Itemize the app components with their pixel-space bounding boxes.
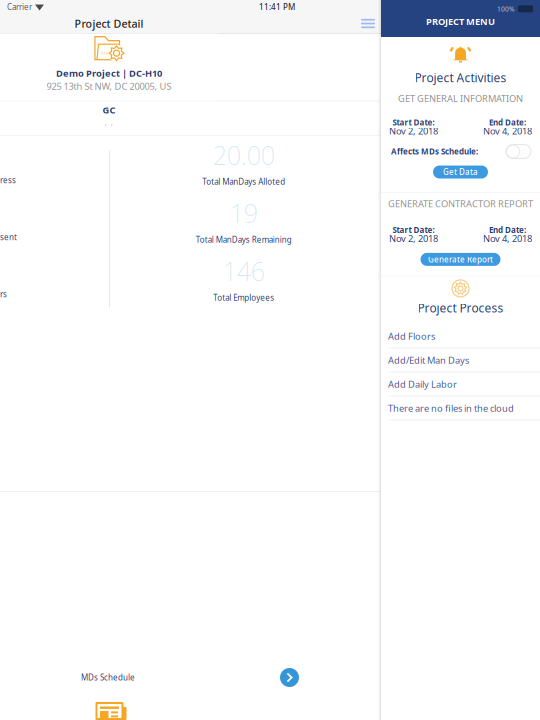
button[interactable]: Generate Report [420, 253, 500, 266]
staticText: 19 [230, 196, 258, 230]
staticText: 100% [497, 4, 515, 13]
staticText: Add/Edit Man Days [388, 354, 469, 366]
staticText: Total ManDays Remaining [196, 234, 292, 245]
staticText: Affects MDs Schedule: [391, 146, 478, 157]
staticText: 925 13th St NW, DC 20005, US [46, 80, 171, 92]
staticText: Add Daily Labor [388, 378, 457, 390]
staticText: There are no files in the cloud [388, 402, 514, 414]
staticText: GC [102, 104, 115, 116]
staticText: GENERATE CONTRACTOR REPORT [388, 197, 533, 210]
staticText: Total ManDays Alloted [202, 176, 285, 187]
staticText: 20.00 [213, 138, 275, 172]
staticText: PROJECT MENU [426, 15, 495, 28]
button[interactable]: There are no files in the cloud [381, 396, 540, 420]
staticText: Project Detail [74, 16, 143, 31]
staticText: 146 [223, 254, 265, 288]
staticText: Generate Report [428, 254, 493, 265]
button[interactable]: Add Daily Labor [381, 372, 540, 396]
staticText: Start Date: [392, 117, 434, 128]
staticText: Nov 2, 2018 [389, 125, 438, 137]
staticText: Project Activities [414, 69, 506, 85]
button[interactable]: Add/Edit Man Days [381, 348, 540, 372]
button[interactable]: Get Data [433, 165, 488, 178]
staticText: Nov 4, 2018 [483, 125, 532, 137]
staticText: ress [0, 175, 16, 185]
staticText: 11:41 PM [259, 2, 295, 12]
staticText: Carrier [7, 2, 32, 12]
staticText: rs [0, 289, 7, 299]
staticText: Nov 4, 2018 [483, 232, 532, 245]
staticText: Add Floors [388, 330, 435, 342]
staticText: Get Data [443, 167, 478, 177]
staticText: sent [0, 232, 17, 242]
staticText: Demo Project | DC-H10 [56, 67, 162, 79]
staticText: GET GENERAL INFORMATION [398, 92, 523, 105]
staticText: Project Process [417, 300, 503, 316]
staticText: Nov 2, 2018 [389, 232, 438, 245]
staticText: End Date: [489, 117, 526, 128]
staticText: MDs Schedule [81, 672, 135, 683]
button[interactable]: MDs Schedule [81, 672, 135, 682]
button[interactable]: Add Floors [381, 324, 540, 348]
staticText: , , [105, 118, 113, 127]
staticText: End Date: [489, 225, 526, 235]
staticText: Start Date: [392, 225, 434, 235]
button[interactable]: Menu [355, 14, 381, 33]
button[interactable]: Open MDs Schedule [280, 668, 299, 687]
staticText: Total Employees [213, 292, 274, 303]
